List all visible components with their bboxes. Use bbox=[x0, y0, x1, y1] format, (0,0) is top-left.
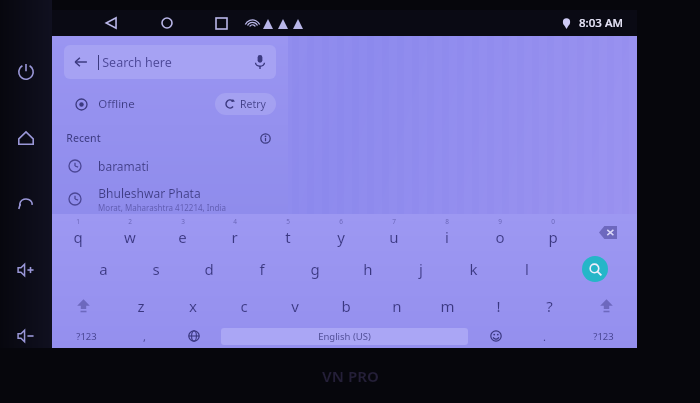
staticText: 3 bbox=[181, 217, 185, 226]
staticText: p bbox=[548, 227, 558, 247]
button[interactable]: Volume up bbox=[6, 250, 46, 290]
button[interactable]: 8 bbox=[420, 214, 473, 250]
staticText: f bbox=[259, 259, 265, 279]
button[interactable]: Emoji bbox=[471, 324, 520, 348]
button[interactable]: Bhuleshwar Phata bbox=[52, 183, 288, 214]
button[interactable]: Power bbox=[6, 52, 46, 92]
staticText: ? bbox=[546, 296, 553, 316]
staticText: d bbox=[204, 259, 214, 279]
staticText: ?123 bbox=[593, 330, 614, 343]
button[interactable]: d bbox=[182, 250, 235, 287]
staticText: Bhuleshwar Phata bbox=[98, 185, 201, 201]
button[interactable]: h bbox=[341, 250, 394, 287]
button[interactable]: s bbox=[129, 250, 182, 287]
staticText: Morat, Maharashtra 412214, India bbox=[98, 202, 226, 213]
button[interactable]: f bbox=[235, 250, 288, 287]
button[interactable]: Back bbox=[94, 10, 128, 36]
button[interactable]: Info bbox=[256, 129, 274, 147]
button[interactable]: j bbox=[394, 250, 447, 287]
staticText: 7 bbox=[392, 217, 396, 226]
staticText: k bbox=[469, 259, 478, 279]
staticText: z bbox=[137, 296, 145, 316]
staticText: Recent bbox=[66, 131, 101, 145]
staticText: Retry bbox=[240, 97, 266, 111]
staticText: ! bbox=[496, 296, 501, 316]
staticText: 9 bbox=[498, 217, 502, 226]
button[interactable]: ! bbox=[473, 287, 524, 324]
button[interactable]: ?123 bbox=[569, 324, 637, 348]
button[interactable]: Home bbox=[150, 10, 184, 36]
button[interactable]: 2 bbox=[104, 214, 156, 250]
staticText: v bbox=[291, 296, 299, 316]
button[interactable]: 7 bbox=[367, 214, 420, 250]
staticText: g bbox=[310, 259, 320, 279]
button[interactable]: a bbox=[77, 250, 129, 287]
button[interactable]: l bbox=[500, 250, 553, 287]
staticText: t bbox=[285, 227, 291, 247]
button[interactable]: 0 bbox=[526, 214, 579, 250]
staticText: s bbox=[152, 259, 160, 279]
button[interactable]: ?123 bbox=[52, 324, 120, 348]
button[interactable]: 1 bbox=[52, 214, 104, 250]
staticText: b bbox=[341, 296, 351, 316]
button[interactable]: Back bbox=[64, 45, 276, 79]
button[interactable]: 5 bbox=[261, 214, 314, 250]
staticText: w bbox=[124, 227, 136, 247]
button[interactable]: g bbox=[288, 250, 341, 287]
button[interactable]: ? bbox=[524, 287, 575, 324]
staticText: u bbox=[389, 227, 399, 247]
button[interactable]: Delete bbox=[579, 214, 637, 250]
button[interactable]: Voice search bbox=[244, 46, 276, 78]
button[interactable]: Change language bbox=[169, 324, 218, 348]
button[interactable]: n bbox=[371, 287, 422, 324]
staticText: English (US) bbox=[318, 330, 371, 343]
button[interactable]: Search bbox=[553, 250, 637, 287]
staticText: 1 bbox=[76, 217, 80, 226]
staticText: m bbox=[440, 296, 455, 316]
staticText: a bbox=[99, 259, 108, 279]
staticText: o bbox=[495, 227, 505, 247]
button[interactable]: k bbox=[447, 250, 500, 287]
button[interactable]: x bbox=[167, 287, 218, 324]
staticText: ?123 bbox=[76, 330, 97, 343]
button[interactable]: b bbox=[320, 287, 371, 324]
staticText: c bbox=[240, 296, 248, 316]
button[interactable]: m bbox=[422, 287, 473, 324]
staticText: e bbox=[178, 227, 187, 247]
button[interactable]: 9 bbox=[473, 214, 526, 250]
staticText: baramati bbox=[98, 158, 149, 174]
button[interactable]: baramati bbox=[52, 149, 288, 183]
button[interactable]: Retry bbox=[225, 93, 266, 115]
staticText: i bbox=[445, 227, 449, 247]
button[interactable]: 4 bbox=[208, 214, 261, 250]
staticText: 8:03 AM bbox=[579, 15, 623, 31]
button[interactable]: Home bbox=[6, 118, 46, 158]
button[interactable]: Back bbox=[6, 184, 46, 224]
staticText: . bbox=[543, 329, 546, 344]
button[interactable]: 6 bbox=[314, 214, 367, 250]
button[interactable]: Shift bbox=[52, 287, 115, 324]
staticText: , bbox=[143, 329, 146, 344]
staticText: 2 bbox=[128, 217, 132, 226]
button[interactable]: Recent apps bbox=[204, 10, 238, 36]
button[interactable]: c bbox=[218, 287, 269, 324]
staticText: j bbox=[419, 259, 423, 279]
button[interactable]: , bbox=[120, 324, 169, 348]
staticText: 4 bbox=[233, 217, 237, 226]
staticText: l bbox=[525, 259, 529, 279]
button[interactable]: z bbox=[115, 287, 167, 324]
button[interactable]: Back bbox=[64, 45, 98, 79]
button[interactable]: 3 bbox=[156, 214, 208, 250]
staticText: Offline bbox=[98, 96, 135, 112]
button[interactable]: English (US) bbox=[221, 328, 468, 345]
staticText: 5 bbox=[286, 217, 290, 226]
button[interactable]: Shift bbox=[575, 287, 637, 324]
button[interactable]: Volume down bbox=[6, 316, 46, 356]
staticText: x bbox=[189, 296, 197, 316]
button[interactable]: v bbox=[269, 287, 320, 324]
staticText: 8 bbox=[445, 217, 449, 226]
staticText: 0 bbox=[551, 217, 555, 226]
staticText: q bbox=[73, 227, 83, 247]
staticText: n bbox=[392, 296, 402, 316]
